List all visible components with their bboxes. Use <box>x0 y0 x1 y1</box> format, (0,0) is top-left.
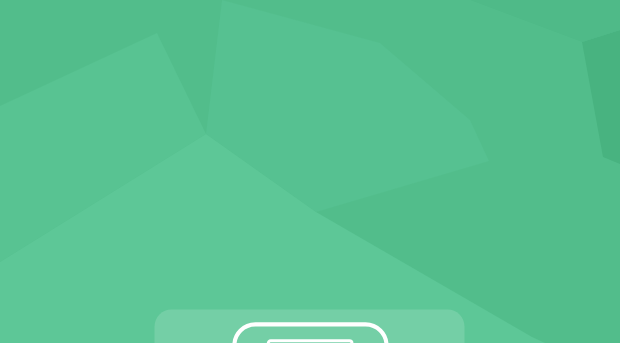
button[interactable]: Splash screen <box>0 0 620 343</box>
